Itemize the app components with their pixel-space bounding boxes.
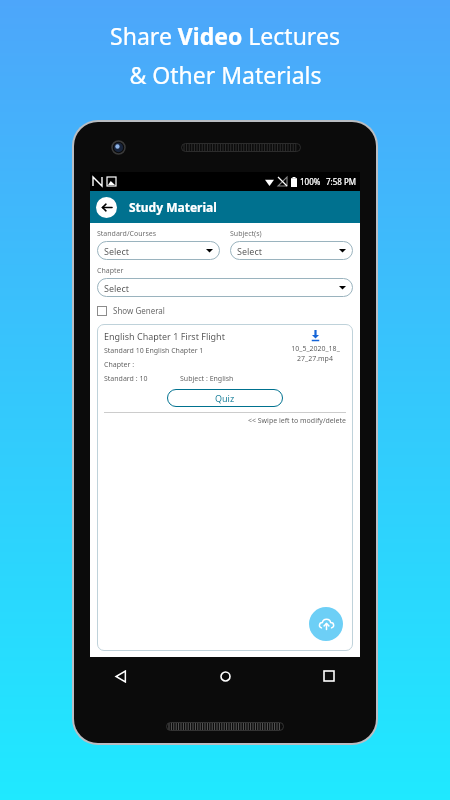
- button[interactable]: Home: [212, 663, 238, 689]
- staticText: Select: [237, 245, 262, 257]
- button[interactable]: Show General: [97, 304, 165, 317]
- staticText: Chapter: [97, 266, 124, 276]
- button[interactable]: Back: [108, 663, 134, 689]
- staticText: Standard/Courses: [97, 229, 157, 239]
- staticText: Subject(s): [230, 229, 262, 239]
- staticText: Study Material: [129, 199, 217, 215]
- staticText: 7:58 PM: [326, 176, 357, 187]
- staticText: 100%: [300, 176, 321, 187]
- button[interactable]: Upload: [309, 607, 343, 641]
- staticText: Show General: [113, 305, 165, 316]
- button[interactable]: Back: [96, 197, 117, 218]
- staticText: 27_27.mp4: [297, 354, 333, 364]
- staticText: English Chapter 1 First Flight: [104, 330, 225, 342]
- staticText: Select: [104, 245, 129, 257]
- staticText: Subject : English: [180, 374, 234, 384]
- staticText: Standard 10 English Chapter 1: [104, 346, 204, 356]
- button[interactable]: Quiz: [167, 389, 283, 407]
- button[interactable]: Select: [97, 278, 353, 297]
- button[interactable]: Select: [97, 241, 220, 260]
- staticText: << Swipe left to modify/delete: [104, 416, 346, 426]
- button[interactable]: Select: [230, 241, 353, 260]
- button[interactable]: Recents: [316, 663, 342, 689]
- button[interactable]: Download: [284, 330, 346, 364]
- staticText: Select: [104, 282, 129, 294]
- staticText: Share Video Lectures: [110, 20, 340, 51]
- staticText: 10_5_2020_18_: [291, 344, 340, 354]
- staticText: Quiz: [215, 392, 235, 404]
- staticText: & Other Materials: [129, 59, 322, 90]
- staticText: Standard : 10: [104, 374, 148, 384]
- staticText: Chapter :: [104, 360, 135, 370]
